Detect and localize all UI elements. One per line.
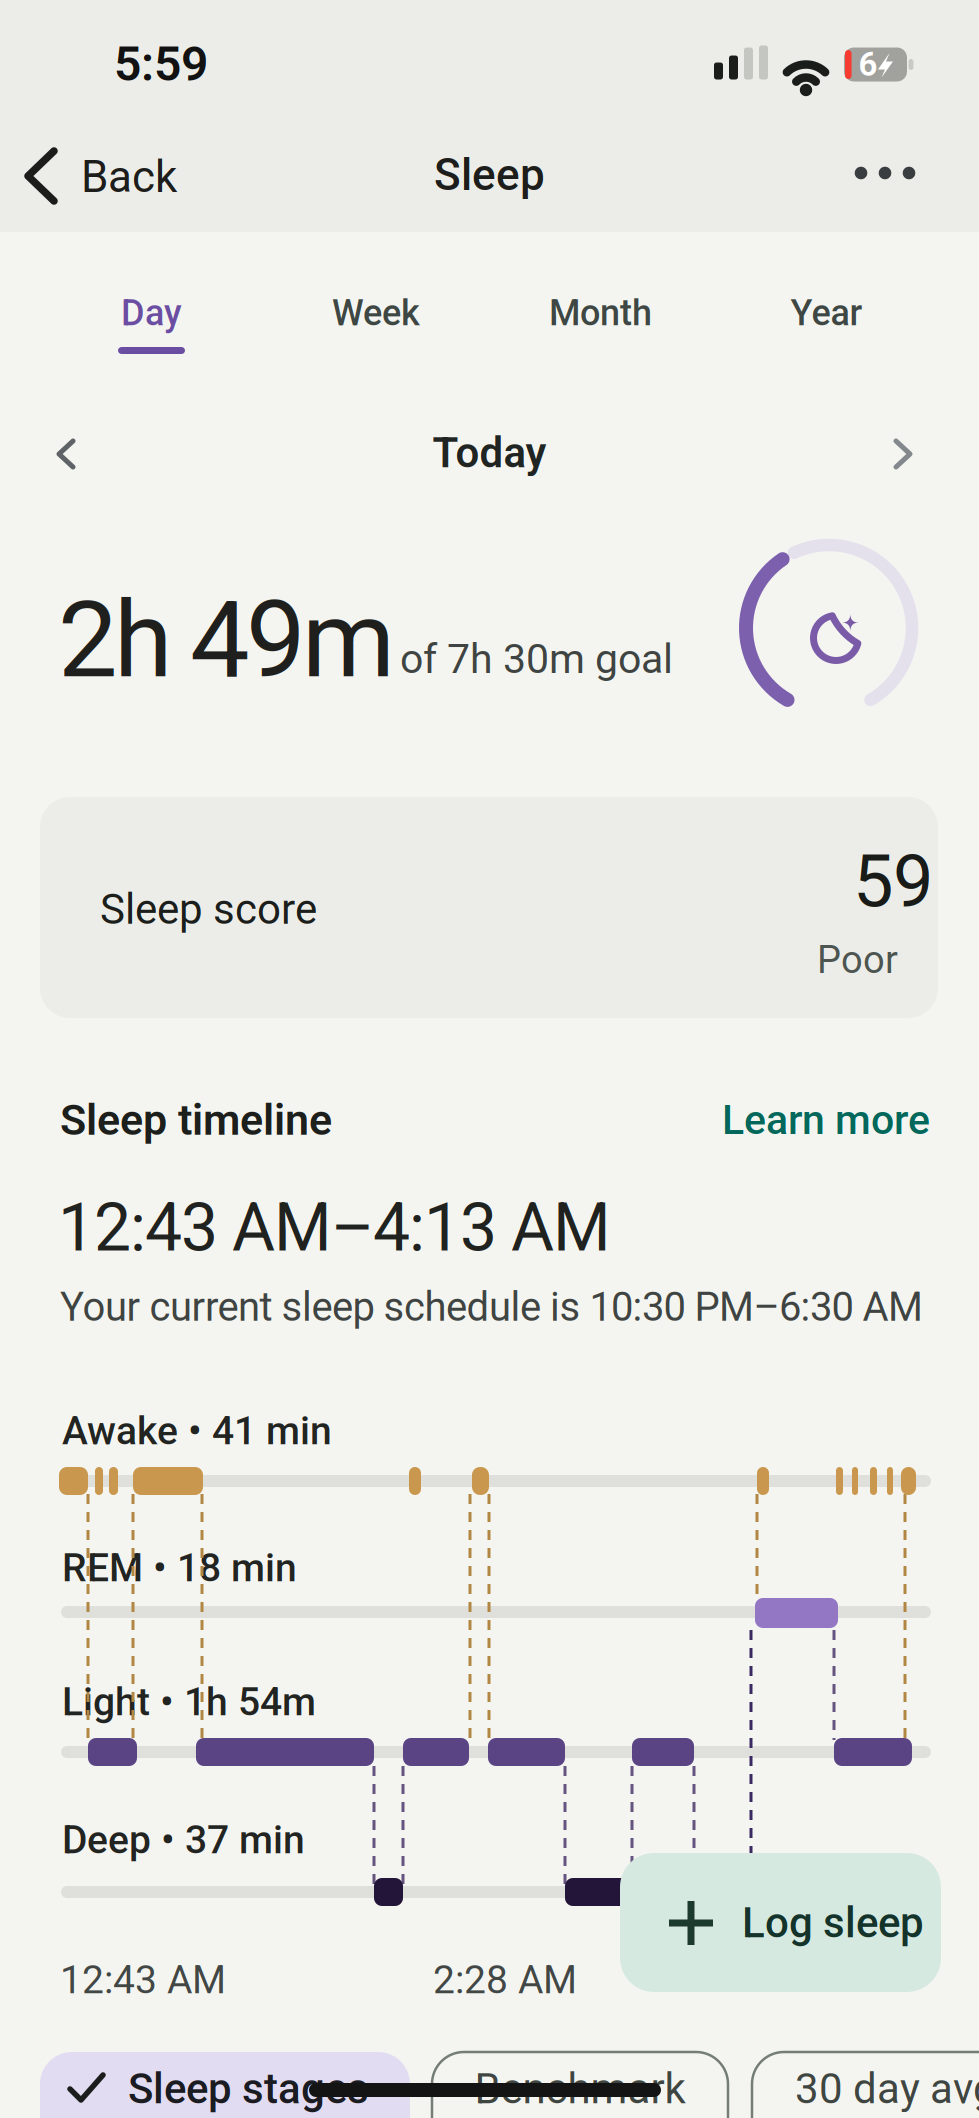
staticText: 30 day avg [795,2064,979,2114]
staticText: Log sleep [742,1898,924,1948]
staticText: 5:59 [114,36,208,92]
button[interactable]: Week [286,276,466,380]
staticText: Month [549,292,652,334]
staticText: Learn more [722,1096,930,1144]
staticText: Sleep stages [128,2064,369,2114]
staticText: Benchmark [474,2064,685,2114]
staticText: 2:28 AM [433,1957,577,2003]
staticText: Sleep [434,149,545,201]
staticText: Awake • 41 min [62,1408,332,1454]
staticText: Back [81,151,177,203]
staticText: Sleep score [100,885,317,934]
button[interactable]: 30 day avg [752,2052,979,2118]
staticText: Your current sleep schedule is 10:30 PM–… [60,1284,923,1330]
staticText: Deep • 37 min [62,1817,305,1863]
staticText: Sleep timeline [60,1095,332,1145]
staticText: of 7h 30m goal [400,635,673,683]
staticText: 12:43 AM–4:13 AM [58,1189,611,1267]
staticText: Light • 1h 54m [62,1679,316,1725]
button[interactable]: Benchmark [432,2052,728,2118]
staticText: 59 [853,840,933,924]
button[interactable]: Back [22,147,222,205]
button[interactable]: Log sleep [620,1853,941,1992]
button[interactable]: Day [61,276,241,380]
button[interactable]: Sleep stages [40,2052,410,2118]
staticText: REM • 18 min [62,1545,297,1591]
staticText: Year [790,292,862,334]
staticText: 12:43 AM [60,1957,226,2003]
staticText: 2h 49m [58,578,395,702]
button[interactable]: Next day [892,437,926,471]
button[interactable]: Previous day [55,437,89,471]
button[interactable]: Year [736,276,916,380]
staticText: 6 [858,45,877,84]
button[interactable]: Sleep score [40,797,938,1018]
staticText: Today [432,428,546,478]
button[interactable]: More options [837,143,933,203]
staticText: Day [121,292,182,334]
button[interactable]: Month [510,276,690,380]
staticText: Poor [817,938,898,982]
staticText: Week [332,292,420,334]
button[interactable]: Learn more [610,1088,930,1152]
